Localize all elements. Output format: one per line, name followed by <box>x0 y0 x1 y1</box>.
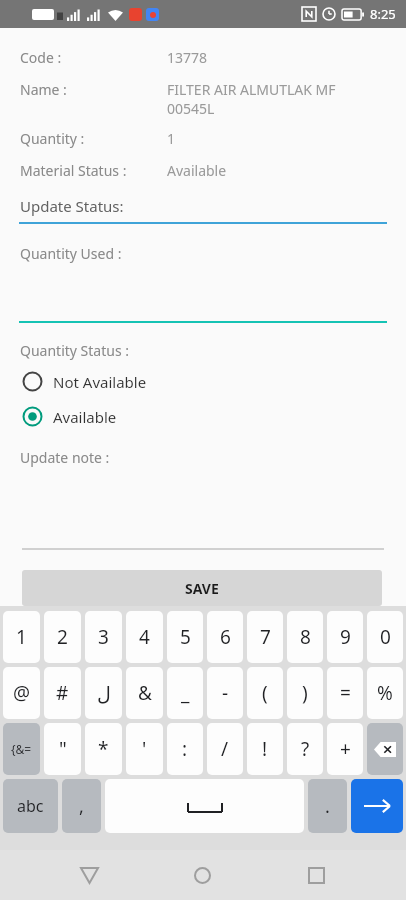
staticText: Update Status: <box>20 196 124 216</box>
staticText: - <box>222 680 229 706</box>
staticText: / <box>221 736 229 762</box>
staticText: 5 <box>180 624 191 650</box>
staticText: ' <box>142 736 147 762</box>
button[interactable]: & <box>126 667 163 719</box>
button[interactable]: 7 <box>247 611 283 663</box>
staticText: . <box>325 794 330 819</box>
button[interactable]: abc <box>3 779 58 833</box>
staticText: Material Status : <box>20 161 127 180</box>
staticText: * <box>98 736 109 762</box>
button[interactable]: 3 <box>85 611 122 663</box>
staticText: Quantity Status : <box>20 341 129 360</box>
staticText: Quantity Used : <box>20 244 122 263</box>
staticText: 1 <box>16 624 27 650</box>
staticText: ! <box>262 736 268 762</box>
button[interactable]: Recents <box>292 851 340 899</box>
button[interactable]: 1 <box>3 611 40 663</box>
button[interactable]: Space <box>105 779 304 833</box>
staticText: Not Available <box>53 372 147 392</box>
staticText: Available <box>53 407 117 427</box>
staticText: & <box>138 680 152 706</box>
staticText: 1 <box>167 129 176 148</box>
button[interactable]: 6 <box>207 611 243 663</box>
button[interactable]: , <box>62 779 101 833</box>
button[interactable]: ) <box>287 667 323 719</box>
staticText: # <box>56 680 69 706</box>
staticText: 9 <box>340 624 351 650</box>
button[interactable]: Backspace <box>367 723 403 775</box>
staticText: 6 <box>220 624 231 650</box>
button[interactable]: = <box>327 667 363 719</box>
button[interactable]: ل <box>85 667 122 719</box>
button[interactable]: ( <box>247 667 283 719</box>
button[interactable]: . <box>308 779 347 833</box>
staticText: 13778 <box>167 48 208 67</box>
button[interactable]: Back <box>65 851 113 899</box>
staticText: _ <box>181 680 190 706</box>
staticText: abc <box>17 795 44 817</box>
staticText: ل <box>97 682 111 704</box>
staticText: Code : <box>20 48 62 67</box>
button[interactable]: 5 <box>167 611 203 663</box>
staticText: " <box>59 736 67 762</box>
button[interactable]: 9 <box>327 611 363 663</box>
button[interactable]: ! <box>247 723 283 775</box>
staticText: , <box>79 794 84 819</box>
staticText: % <box>377 680 393 706</box>
button[interactable]: " <box>44 723 81 775</box>
staticText: Update note : <box>20 448 110 467</box>
button[interactable]: Available <box>0 403 406 430</box>
button[interactable]: Enter <box>351 779 403 833</box>
button[interactable]: % <box>367 667 403 719</box>
button[interactable]: - <box>207 667 243 719</box>
staticText: = <box>340 680 351 706</box>
button[interactable]: _ <box>167 667 203 719</box>
staticText: ? <box>301 736 310 762</box>
button[interactable]: Update Status: <box>0 196 406 224</box>
staticText: Quantity : <box>20 129 85 148</box>
staticText: + <box>340 736 351 762</box>
staticText: FILTER AIR ALMUTLAK MF 00545L <box>167 80 336 118</box>
staticText: Name : <box>20 80 67 99</box>
button[interactable]: ? <box>287 723 323 775</box>
button[interactable]: : <box>167 723 203 775</box>
button[interactable] <box>0 305 406 323</box>
staticText: 4 <box>139 624 150 650</box>
button[interactable]: ' <box>126 723 163 775</box>
button[interactable]: 0 <box>367 611 403 663</box>
staticText: 8 <box>300 624 311 650</box>
staticText: @ <box>13 680 31 706</box>
staticText: ) <box>302 680 308 706</box>
button[interactable]: / <box>207 723 243 775</box>
staticText: SAVE <box>185 579 219 598</box>
staticText: : <box>182 736 188 762</box>
button[interactable]: @ <box>3 667 40 719</box>
staticText: 7 <box>260 624 271 650</box>
staticText: 2 <box>57 624 68 650</box>
staticText: {&= <box>11 741 32 757</box>
staticText: 0 <box>380 624 391 650</box>
button[interactable]: 8 <box>287 611 323 663</box>
button[interactable]: 2 <box>44 611 81 663</box>
button[interactable]: + <box>327 723 363 775</box>
button[interactable]: * <box>85 723 122 775</box>
staticText: 3 <box>98 624 109 650</box>
staticText: 8:25 <box>370 5 396 23</box>
button[interactable]: Not Available <box>0 368 406 395</box>
button[interactable]: 4 <box>126 611 163 663</box>
button[interactable]: Home <box>178 851 226 899</box>
button[interactable]: SAVE <box>22 570 382 606</box>
staticText: ( <box>262 680 268 706</box>
button[interactable]: # <box>44 667 81 719</box>
staticText: Available <box>167 161 227 180</box>
button[interactable]: Symbols <box>3 723 40 775</box>
